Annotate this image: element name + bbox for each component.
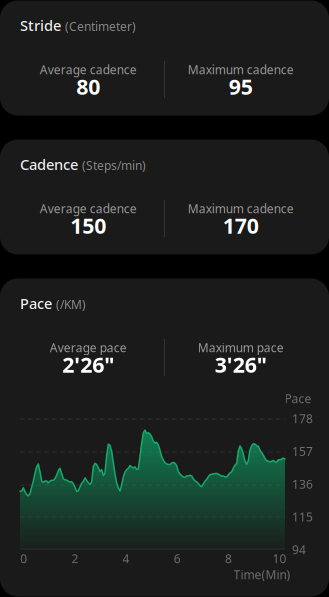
staticText: 2'26" — [62, 350, 114, 379]
staticText: 80 — [76, 72, 100, 101]
staticText: 95 — [229, 72, 253, 101]
staticText: 157 — [292, 443, 313, 459]
staticText: Average cadence — [40, 200, 137, 216]
staticText: Pace — [284, 390, 311, 406]
staticText: 8 — [225, 550, 232, 566]
staticText: 115 — [292, 509, 313, 525]
staticText: 4 — [123, 550, 130, 566]
staticText: (Centimeter) — [65, 18, 136, 34]
staticText: Average cadence — [40, 61, 137, 77]
staticText: 94 — [292, 541, 306, 557]
staticText: 136 — [292, 476, 313, 492]
staticText: Maximum cadence — [188, 61, 294, 77]
staticText: 2 — [71, 550, 78, 566]
staticText: 6 — [174, 550, 181, 566]
staticText: 170 — [223, 211, 259, 240]
staticText: Time(Min) — [233, 566, 290, 582]
staticText: 10 — [273, 550, 287, 566]
staticText: 178 — [292, 410, 313, 426]
staticText: (/KM) — [56, 296, 86, 312]
staticText: (Steps/min) — [82, 157, 146, 173]
staticText: 0 — [20, 550, 27, 566]
staticText: Maximum cadence — [188, 200, 294, 216]
staticText: Cadence — [20, 154, 78, 174]
staticText: Average pace — [50, 339, 127, 355]
staticText: 3'26" — [215, 350, 267, 379]
staticText: Pace — [20, 293, 52, 313]
staticText: Maximum pace — [198, 339, 284, 355]
staticText: 150 — [70, 211, 106, 240]
staticText: Stride — [20, 15, 61, 35]
